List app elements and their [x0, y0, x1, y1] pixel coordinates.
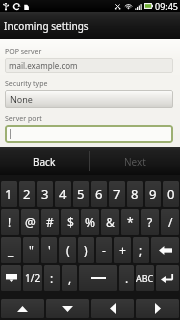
button[interactable]: - — [96, 237, 112, 263]
staticText: _ — [8, 242, 14, 258]
button[interactable]: ? — [141, 209, 159, 235]
button[interactable]: Next — [90, 147, 180, 175]
staticText: ) — [84, 242, 88, 258]
button[interactable]: 4 — [55, 181, 71, 207]
button[interactable]: Enter — [156, 265, 179, 291]
button[interactable]: @ — [21, 209, 39, 235]
staticText: Next — [124, 155, 146, 169]
button[interactable]: 6 — [91, 181, 107, 207]
staticText: - — [102, 242, 106, 258]
button[interactable]: ABC — [136, 265, 154, 291]
button[interactable]: % — [81, 209, 99, 235]
button[interactable]: 1 — [1, 181, 17, 207]
staticText: 8 — [131, 185, 139, 203]
button[interactable]: ) — [78, 237, 94, 263]
button[interactable]: mail.example.com — [5, 58, 173, 73]
button[interactable]: $ — [61, 209, 79, 235]
button[interactable]: & — [101, 209, 119, 235]
staticText: # — [46, 214, 54, 230]
staticText: 1/2 — [25, 271, 41, 285]
button[interactable]: _ — [1, 237, 21, 263]
button[interactable]: Down — [46, 299, 89, 318]
button[interactable]: 9 — [145, 181, 161, 207]
button[interactable]: 8 — [127, 181, 143, 207]
staticText: & — [106, 214, 115, 230]
button[interactable]: # — [41, 209, 59, 235]
button[interactable]: 3 — [37, 181, 53, 207]
button[interactable]: Left — [91, 299, 134, 318]
button[interactable]: Up — [1, 299, 44, 318]
staticText: 09:45 — [155, 0, 179, 12]
button[interactable]: 1/2 — [23, 265, 42, 291]
button[interactable] — [5, 125, 173, 143]
staticText: ABC — [136, 272, 154, 284]
button[interactable]: Hide keyboard — [1, 265, 21, 291]
button[interactable]: None — [5, 90, 173, 108]
button[interactable]: * — [121, 209, 139, 235]
staticText: 1 — [5, 185, 13, 203]
staticText: ; — [139, 242, 143, 258]
button[interactable]: ; — [133, 237, 149, 263]
button[interactable]: Space — [79, 265, 117, 291]
staticText: POP server — [5, 47, 42, 57]
button[interactable]: " — [23, 237, 39, 263]
staticText: Security type — [5, 79, 48, 89]
staticText: 3 — [41, 185, 49, 203]
staticText: ( — [66, 242, 70, 258]
staticText: Server port — [5, 114, 42, 124]
staticText: None — [10, 93, 33, 105]
staticText: $ — [67, 214, 74, 230]
button[interactable]: ' — [41, 237, 57, 263]
staticText: 6 — [95, 185, 103, 203]
staticText: % — [85, 214, 95, 230]
button[interactable]: Right — [136, 299, 179, 318]
button[interactable]: 0 — [163, 181, 179, 207]
staticText: ' — [48, 242, 51, 258]
staticText: 0 — [167, 185, 175, 203]
button[interactable]: : — [44, 265, 60, 291]
staticText: Back — [33, 155, 56, 169]
button[interactable]: Backspace — [151, 237, 179, 263]
button[interactable]: / — [161, 209, 179, 235]
staticText: / — [168, 214, 173, 230]
staticText: 2 — [23, 185, 31, 203]
button[interactable]: ! — [1, 209, 19, 235]
button[interactable]: 7 — [109, 181, 125, 207]
staticText: , — [68, 270, 72, 286]
staticText: Incoming settings — [4, 19, 89, 33]
button[interactable]: 5 — [73, 181, 89, 207]
staticText: ! — [8, 214, 12, 230]
staticText: ? — [147, 214, 153, 230]
staticText: 5 — [77, 185, 85, 203]
staticText: : — [50, 270, 54, 286]
button[interactable]: Back — [0, 147, 89, 175]
button[interactable]: , — [62, 265, 77, 291]
staticText: @ — [25, 214, 36, 230]
staticText: mail.example.com — [9, 60, 78, 71]
button[interactable]: + — [114, 237, 131, 263]
button[interactable]: . — [119, 265, 134, 291]
staticText: + — [119, 242, 126, 258]
staticText: . — [125, 270, 129, 286]
staticText: 9 — [149, 185, 157, 203]
staticText: " — [29, 242, 34, 258]
button[interactable]: ( — [59, 237, 76, 263]
staticText: * — [127, 214, 134, 230]
staticText: 7 — [113, 185, 121, 203]
button[interactable]: 2 — [19, 181, 35, 207]
staticText: 4 — [59, 185, 67, 203]
